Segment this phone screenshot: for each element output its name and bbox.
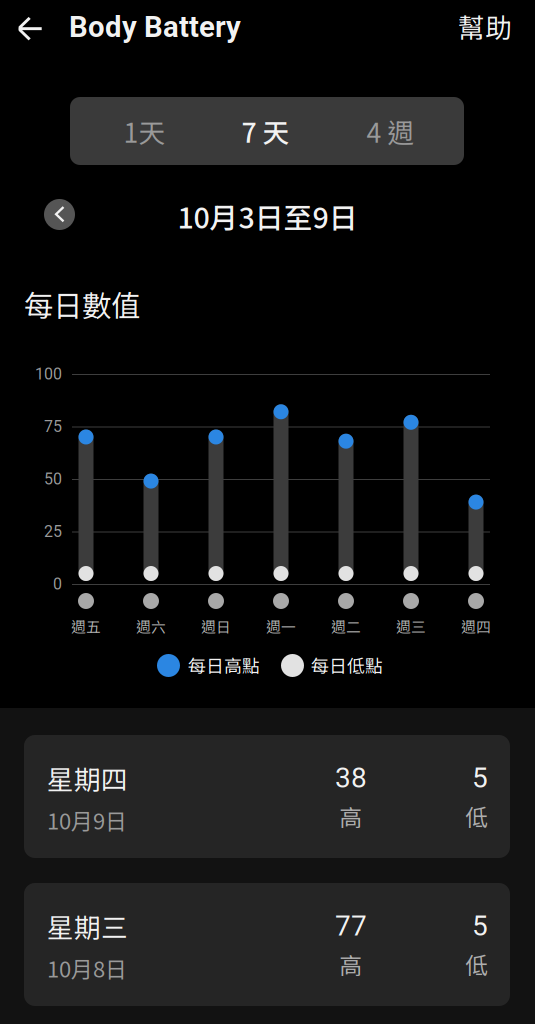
staticText: 週四	[461, 615, 491, 637]
staticText: 38	[335, 762, 367, 794]
staticText: 高	[339, 948, 362, 980]
staticText: 每日數值	[24, 283, 140, 325]
button[interactable]: 4 週	[325, 97, 456, 165]
staticText: 低	[465, 800, 488, 832]
staticText: 每日低點	[311, 652, 383, 678]
staticText: 25	[44, 522, 62, 541]
staticText: 每日高點	[188, 652, 260, 678]
staticText: 星期四	[47, 759, 128, 797]
staticText: 高	[339, 800, 362, 832]
staticText: 幫助	[458, 7, 512, 45]
staticText: 50	[44, 470, 62, 488]
button[interactable]: Previous week	[44, 199, 75, 230]
staticText: 低	[465, 948, 488, 980]
button[interactable]: 7 天	[200, 97, 331, 165]
staticText: 週三	[396, 615, 426, 637]
staticText: 10月9日	[47, 804, 127, 836]
button[interactable]: 1天	[79, 97, 210, 165]
staticText: 4 週	[366, 112, 414, 150]
staticText: 77	[335, 910, 367, 942]
button[interactable]: 星期四	[24, 735, 510, 858]
staticText: 週六	[136, 615, 166, 637]
staticText: 5	[472, 910, 488, 942]
staticText: 10月3日至9日	[177, 195, 357, 237]
staticText: 100	[35, 365, 62, 383]
staticText: 75	[44, 417, 62, 436]
staticText: 週五	[71, 615, 101, 637]
button[interactable]: 幫助	[458, 6, 535, 46]
staticText: Body Battery	[69, 10, 241, 44]
staticText: 週日	[201, 615, 231, 637]
button[interactable]: 星期三	[24, 883, 510, 1006]
button[interactable]: Back	[4, 3, 56, 55]
staticText: 週二	[331, 615, 361, 637]
staticText: 1天	[123, 112, 165, 150]
staticText: 週一	[266, 615, 296, 637]
staticText: 10月8日	[47, 952, 127, 984]
staticText: 5	[472, 762, 488, 794]
staticText: 星期三	[47, 907, 128, 945]
staticText: 0	[53, 575, 62, 593]
staticText: 7 天	[241, 112, 289, 150]
